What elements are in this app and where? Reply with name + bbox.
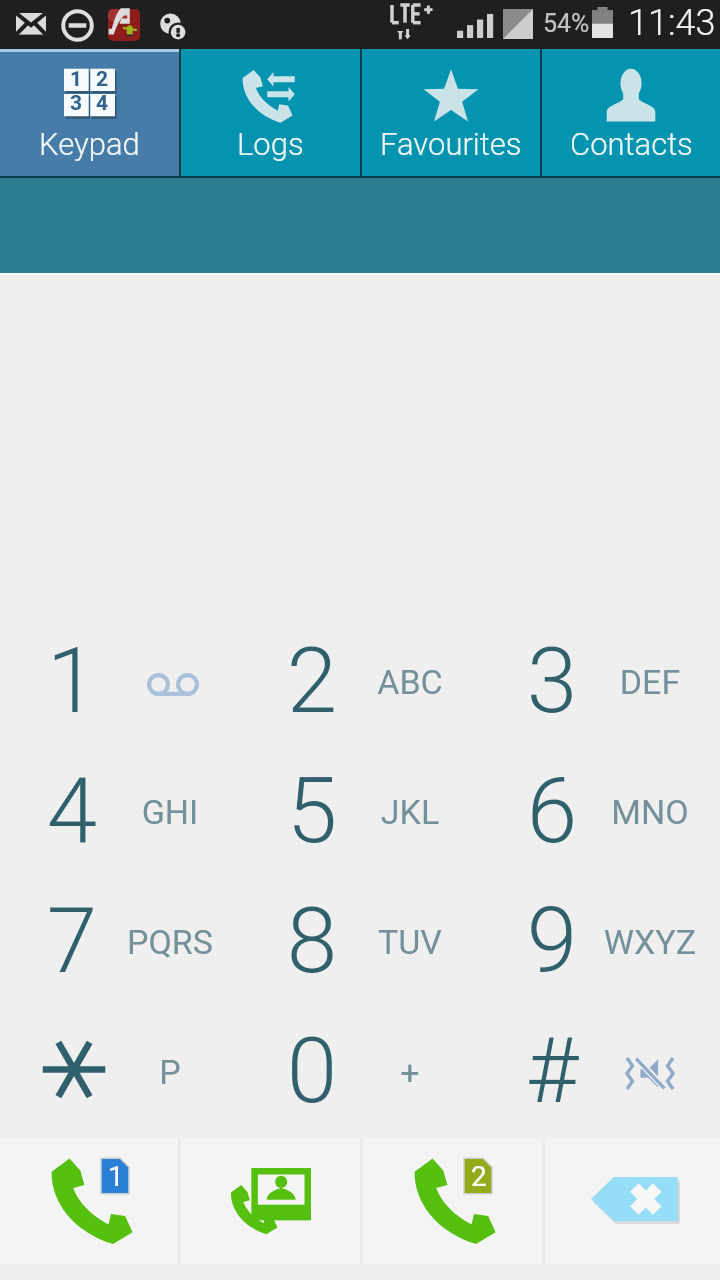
button[interactable] [480,755,720,885]
staticText: Keypad [39,126,140,162]
staticText: 3 [70,91,83,116]
staticText: P [90,1052,250,1092]
staticText: Contacts [570,126,693,162]
staticText: 5 [240,758,384,865]
button[interactable] [240,625,480,755]
staticText: 6 [480,758,624,865]
staticText: 9 [480,888,624,995]
staticText: 2 [96,67,109,91]
button[interactable] [480,1015,720,1145]
button[interactable] [0,1015,240,1145]
button[interactable] [0,885,240,1015]
staticText: TUV [330,922,490,962]
button[interactable] [480,885,720,1015]
button[interactable]: 1 [0,49,179,178]
button[interactable] [0,755,240,885]
staticText: 11:43 [628,2,716,44]
button[interactable] [0,625,240,755]
staticText: DEF [570,662,720,702]
staticText: 0 [240,1018,384,1125]
button[interactable]: Favourites [362,49,540,178]
button[interactable] [240,885,480,1015]
staticText: Favourites [380,126,522,162]
staticText: 8 [240,888,384,995]
button[interactable]: Contacts [542,49,720,178]
button[interactable]: Logs [181,49,360,178]
staticText: MNO [570,792,720,832]
button[interactable]: Video call [181,1138,360,1264]
staticText: 4 [96,91,109,116]
staticText: 54% [543,9,590,38]
staticText: 4 [0,758,144,865]
staticText: 7 [0,888,144,995]
staticText: 1 [108,1160,124,1193]
button[interactable]: Call with SIM 2 [363,1138,542,1264]
button[interactable] [480,625,720,755]
button[interactable] [240,755,480,885]
staticText: 1 [0,628,144,735]
staticText: WXYZ [570,922,720,962]
button[interactable]: Call with SIM 1 [0,1138,178,1264]
staticText: + [330,1052,490,1092]
staticText: Logs [237,126,304,162]
staticText: 2 [471,1160,487,1193]
staticText: GHI [90,792,250,832]
staticText: 3 [480,628,624,735]
staticText: # [480,1018,624,1125]
button[interactable]: Backspace [545,1138,720,1264]
staticText: 1 [70,67,83,91]
staticText: 2 [240,628,384,735]
staticText: PQRS [90,922,250,962]
staticText: JKL [330,792,490,832]
button[interactable] [240,1015,480,1145]
staticText: ABC [330,662,490,702]
